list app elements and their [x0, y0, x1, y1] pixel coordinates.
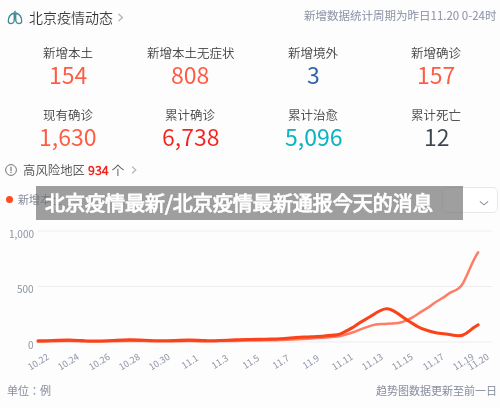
staticText: 10.24 — [55, 350, 82, 373]
staticText: 新增本土无症状 — [147, 43, 235, 61]
staticText: 154 — [49, 57, 88, 90]
staticText: 累计治愈 — [288, 105, 339, 123]
staticText: 新增境外 — [288, 43, 339, 61]
staticText: 1,000 — [9, 226, 34, 240]
staticText: 5,096 — [285, 119, 343, 152]
button[interactable]: Select time range — [442, 187, 498, 213]
staticText: 累计确诊 — [165, 105, 216, 123]
staticText: 6,738 — [162, 119, 220, 152]
staticText: 10.22 — [25, 350, 52, 373]
staticText: 新增本土 — [43, 43, 94, 61]
staticText: 12 — [424, 119, 450, 152]
staticText: 157 — [417, 57, 456, 90]
staticText: 11.20 — [465, 350, 492, 373]
staticText: 趋势图数据更新至前一日 — [376, 382, 497, 398]
staticText: 累计死亡 — [411, 105, 462, 123]
button[interactable]: 高风险地区 — [5, 159, 139, 181]
staticText: 11.11 — [329, 350, 356, 373]
staticText: 高风险地区 — [23, 161, 88, 179]
staticText: 11.13 — [359, 350, 386, 373]
button[interactable]: 新增境外 — [252, 43, 375, 94]
staticText: 北京疫情最新/北京疫情最新通报今天的消息 — [45, 188, 433, 217]
staticText: 新增数据统计周期为昨日11.20 0-24时 — [304, 7, 497, 24]
button[interactable]: 北京疫情动态 — [6, 7, 126, 27]
staticText: 1,630 — [39, 119, 97, 152]
staticText: 11.19 — [450, 350, 477, 373]
button[interactable]: 累计治愈 — [252, 105, 375, 156]
button[interactable]: 新增本土无症状 — [129, 43, 252, 94]
staticText: 个 — [109, 161, 125, 179]
staticText: 11.9 — [300, 351, 322, 372]
staticText: 11.7 — [270, 351, 292, 372]
staticText: 808 — [171, 57, 210, 90]
staticText: 3 — [307, 57, 320, 90]
button[interactable]: 新增本土 — [6, 186, 62, 212]
staticText: 11.17 — [420, 350, 447, 373]
button[interactable]: 累计死亡 — [375, 105, 498, 156]
button[interactable]: 新增本土 — [7, 43, 129, 94]
staticText: 北京疫情动态 — [29, 7, 113, 27]
staticText: 单位：例 — [7, 382, 51, 398]
staticText: 10.26 — [86, 350, 113, 373]
button[interactable]: 新增确诊 — [375, 43, 498, 94]
staticText: 新增确诊 — [411, 43, 462, 61]
button[interactable]: 累计确诊 — [129, 105, 252, 156]
staticText: 11.15 — [389, 350, 416, 373]
staticText: 11.1 — [179, 351, 201, 372]
button[interactable]: 现有确诊 — [7, 105, 129, 156]
staticText: 新增本土 — [18, 191, 62, 207]
staticText: 10.28 — [116, 350, 143, 373]
staticText: 10.30 — [146, 350, 173, 373]
staticText: 11.5 — [240, 351, 262, 372]
staticText: 500 — [17, 281, 34, 295]
staticText: 0 — [28, 337, 34, 351]
staticText: 现有确诊 — [43, 105, 94, 123]
staticText: 934 — [88, 161, 109, 179]
staticText: 11.3 — [209, 351, 231, 372]
